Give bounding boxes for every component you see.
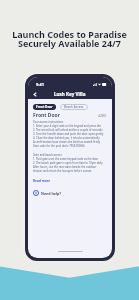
staticText: 4. Close the door behind you; it relocks… [33, 136, 100, 140]
staticText: Need help? [41, 191, 61, 196]
button[interactable]: Back [30, 90, 39, 99]
staticText: 3. Turn the handle down and push the doo… [33, 132, 104, 136]
staticText: After hours, use the rear stairs beside … [33, 165, 97, 169]
staticText: Gate and beach access [33, 153, 62, 157]
staticText: 9:41 [36, 82, 44, 87]
staticText: 2. The beach path gate is open from 6am … [33, 161, 103, 165]
staticText: Launch Codes to Paradise Securely Availa… [0, 28, 139, 50]
staticText: Lush Key Villa [54, 91, 86, 97]
staticText: A confirmation buzz means the bolt has s… [33, 140, 101, 144]
staticText: Front Door [33, 112, 60, 119]
staticText: 4280 [98, 113, 107, 118]
staticText: shower and return the loungers before su… [33, 169, 92, 173]
staticText: 1. Pool gate uses the same keypad code a… [33, 157, 99, 161]
staticText: Gate code for the pool deck: 7555292666 [33, 144, 85, 148]
button[interactable]: Need help? [33, 190, 61, 196]
button[interactable]: Read more [33, 179, 51, 183]
staticText: Front Door [36, 105, 53, 109]
button[interactable]: Beach Access [64, 104, 84, 110]
staticText: 1. Enter your 4 digit code on the keypad… [33, 124, 102, 128]
staticText: Your access instructions [33, 120, 64, 124]
staticText: 2. The smart lock will unlock within a c… [33, 128, 103, 132]
button[interactable]: Front Door [36, 104, 53, 110]
staticText: Beach Access [64, 105, 84, 109]
